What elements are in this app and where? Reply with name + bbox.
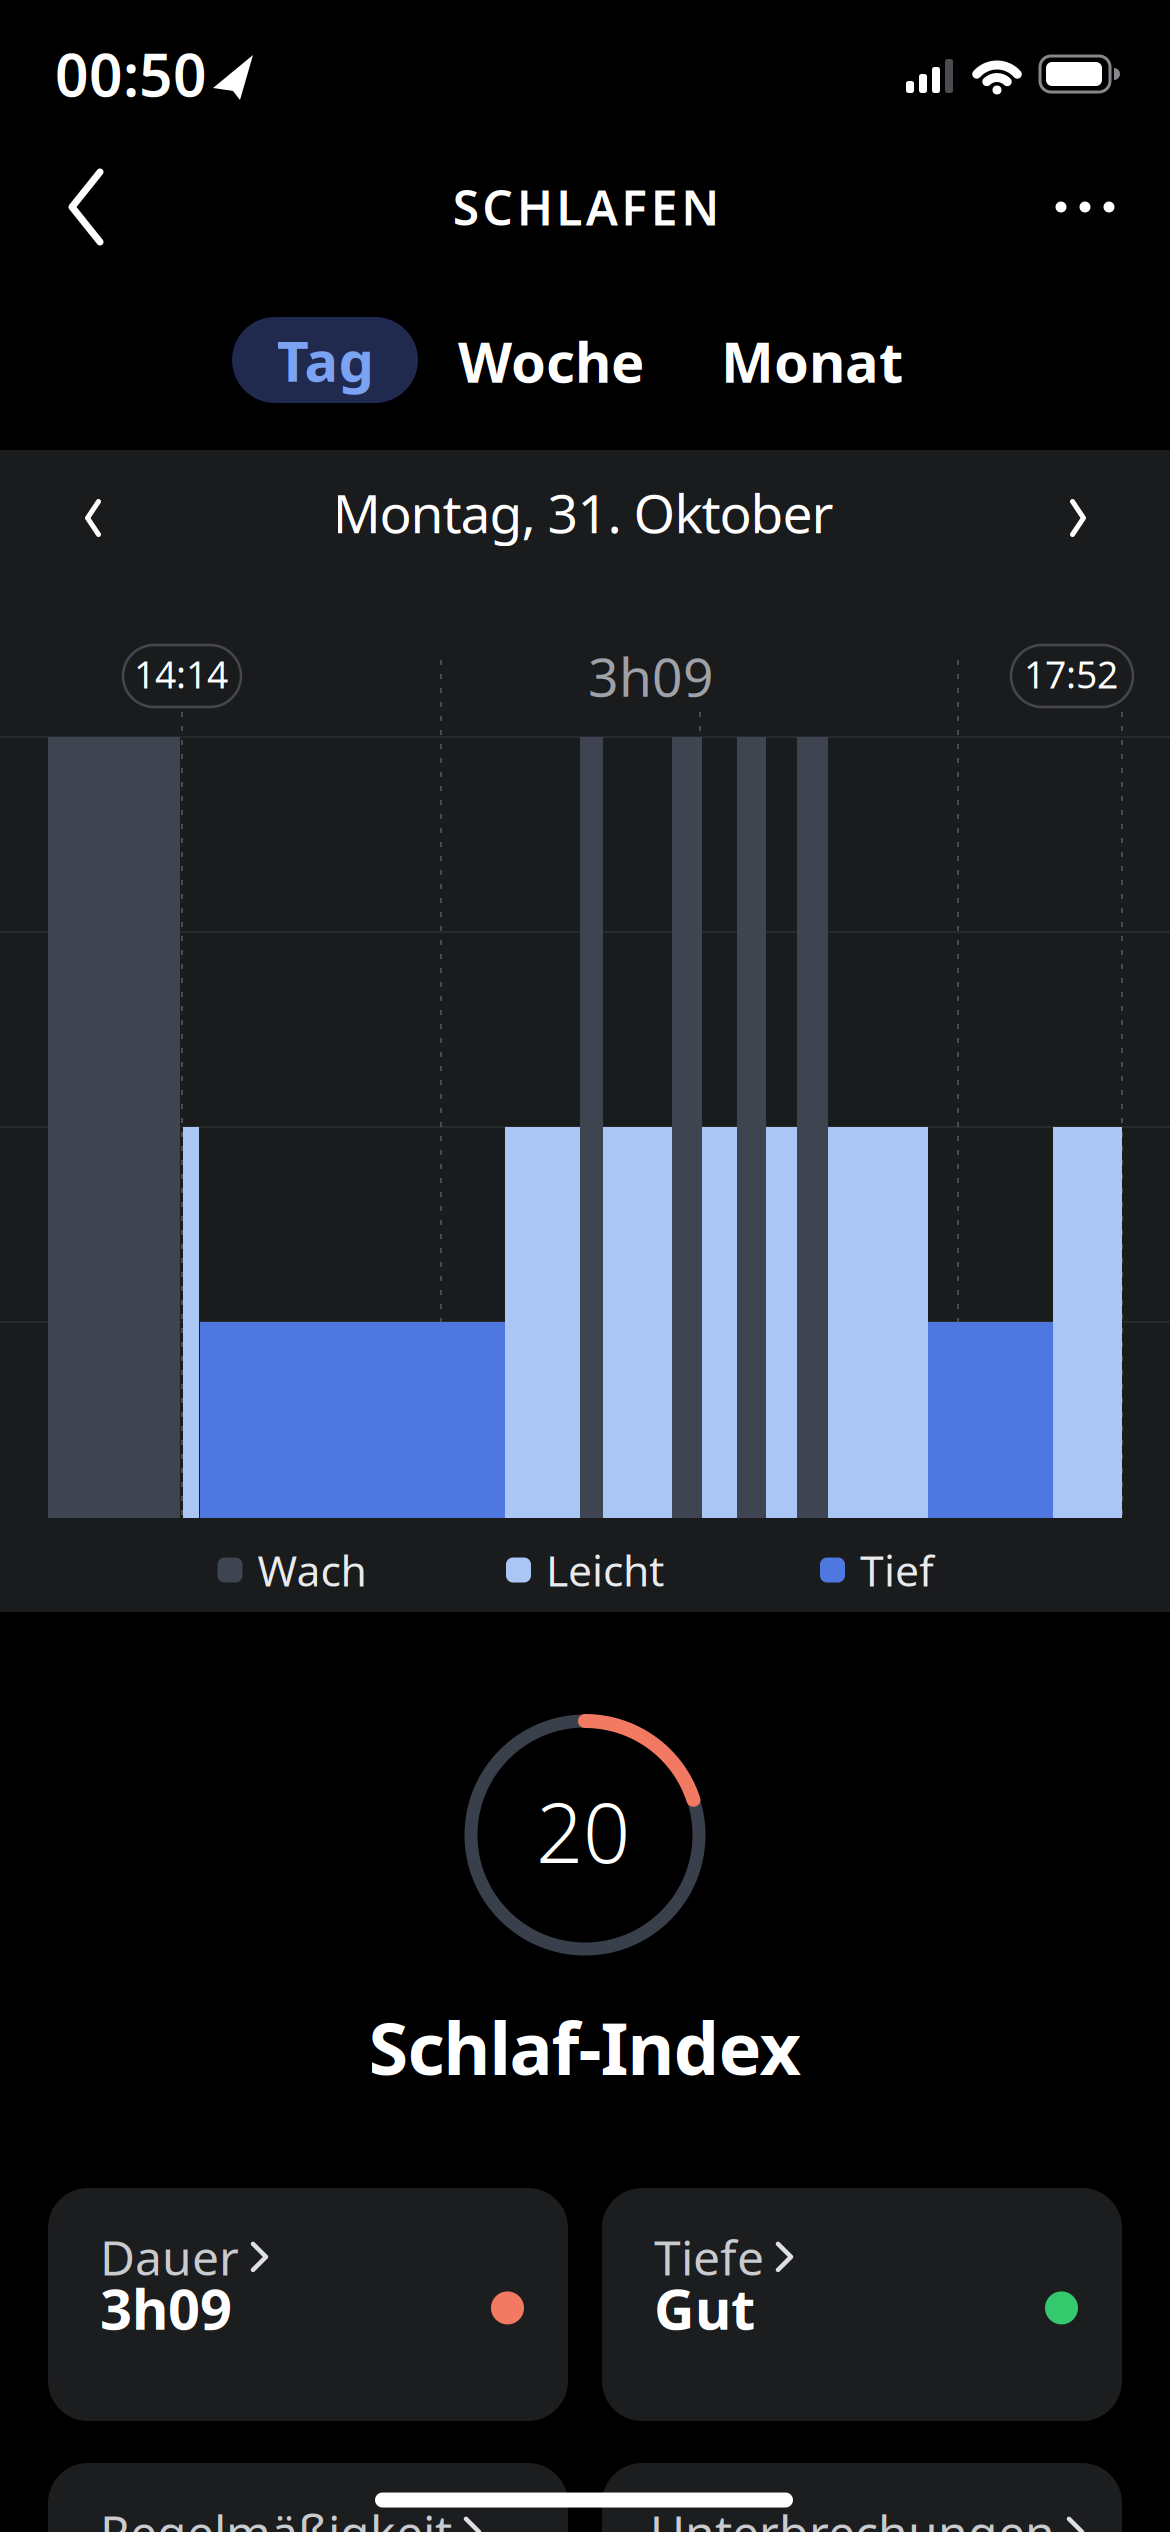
staticText: Tag (276, 323, 373, 397)
button[interactable]: Tiefe (602, 2188, 1122, 2421)
staticText: 00:50 (55, 35, 207, 113)
button[interactable]: Dauer (48, 2188, 568, 2421)
button[interactable]: Next day (1050, 479, 1105, 556)
button[interactable]: Regelmäßigkeit (48, 2463, 568, 2532)
button[interactable]: Monat (711, 314, 913, 408)
staticText: 17:52 (1024, 649, 1118, 699)
staticText: Leicht (546, 1542, 664, 1598)
button[interactable]: More (1039, 185, 1130, 228)
staticText: Regelmäßigkeit (100, 2500, 452, 2532)
staticText: Dauer (100, 2225, 239, 2289)
staticText: 20 (536, 1776, 630, 1886)
staticText: Wach (257, 1542, 366, 1598)
staticText: 14:14 (134, 649, 228, 699)
staticText: Monat (721, 324, 903, 398)
staticText: Unterbrechungen (650, 2500, 1055, 2532)
staticText: Tiefe (654, 2225, 764, 2289)
staticText: SCHLAFEN (453, 175, 719, 239)
button[interactable]: Unterbrechungen (602, 2463, 1122, 2532)
staticText: 3h09 (100, 2271, 232, 2345)
button[interactable]: Woche (448, 314, 654, 408)
staticText: Woche (458, 324, 644, 398)
staticText: Gut (654, 2271, 755, 2345)
staticText: Schlaf-Index (368, 1999, 801, 2095)
button[interactable]: Tag (232, 317, 418, 403)
staticText: Montag, 31. Oktober (332, 477, 833, 548)
button[interactable]: Previous day (65, 479, 120, 556)
staticText: 3h09 (588, 641, 714, 711)
button[interactable]: Back (52, 152, 120, 262)
staticText: Tief (860, 1542, 934, 1598)
